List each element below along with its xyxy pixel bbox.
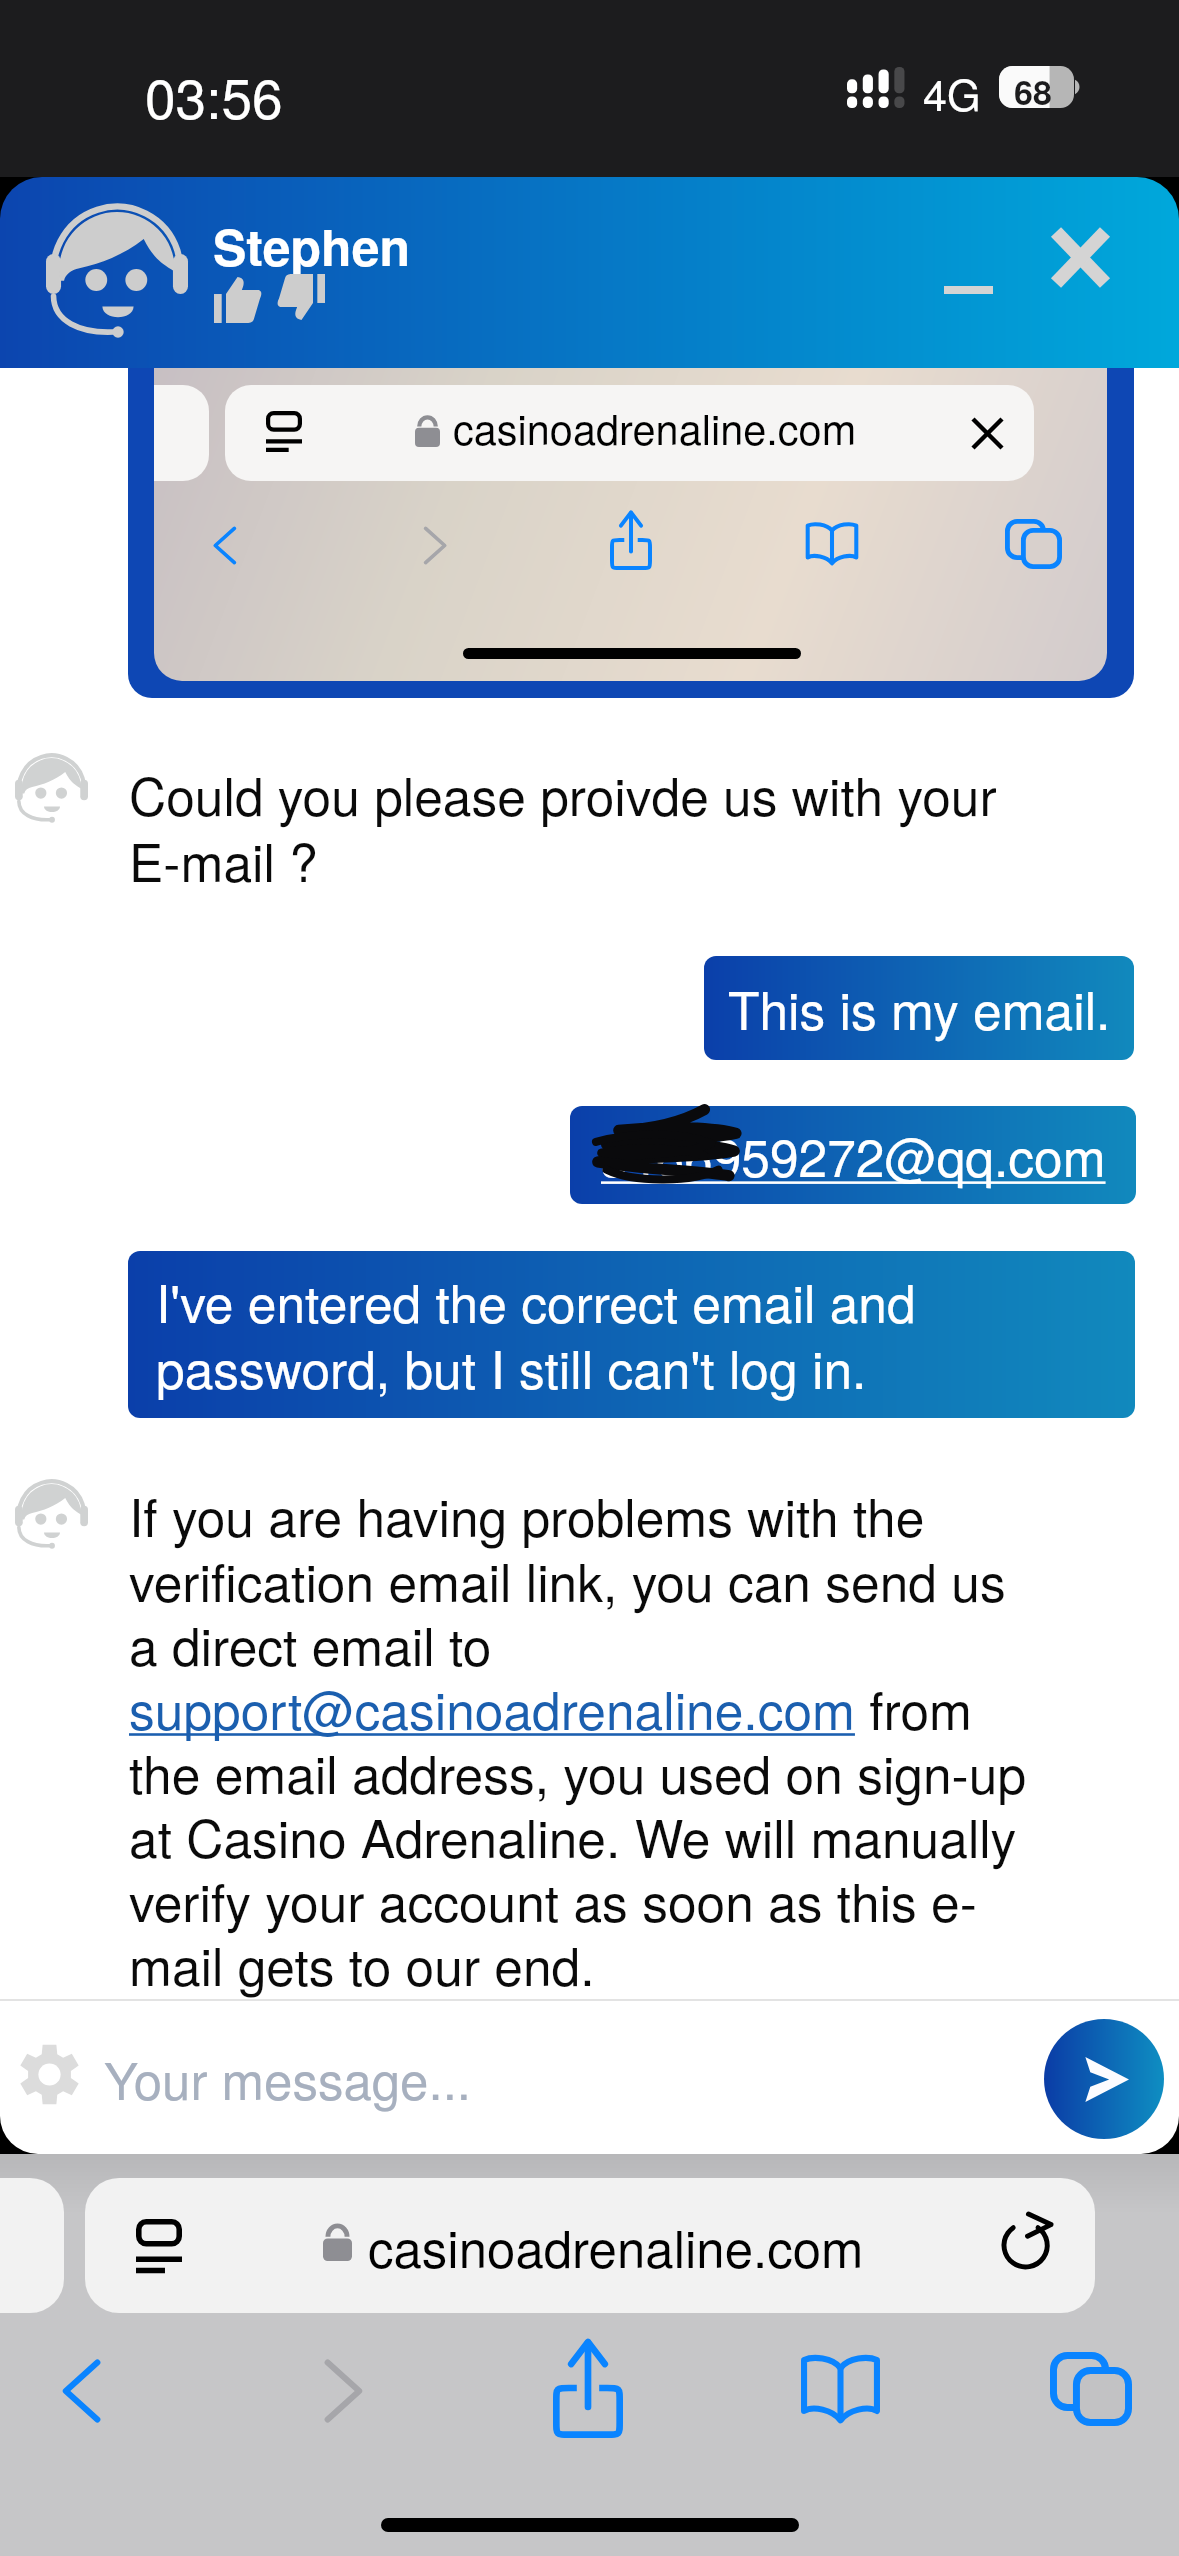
button[interactable]: Close — [1027, 200, 1131, 304]
staticText: s466959272@qq.com — [601, 1118, 1106, 1192]
button[interactable]: Minimize — [912, 237, 1025, 337]
staticText: This is my email. — [728, 971, 1111, 1045]
button[interactable]: Bookmarks — [800, 2356, 881, 2423]
button[interactable]: Tabs — [1050, 2352, 1132, 2426]
button[interactable]: Forward — [325, 2360, 363, 2422]
staticText: 4G — [923, 62, 981, 124]
button[interactable]: Send — [1044, 2019, 1164, 2139]
button[interactable]: Share — [553, 2338, 623, 2438]
staticText: casinoadrenaline.com — [368, 2209, 864, 2282]
staticText: Could you please proivde us with your E-… — [129, 757, 1059, 896]
staticText: casinoadrenaline.com — [453, 397, 857, 456]
staticText: 68 — [1014, 67, 1052, 109]
button[interactable]: Rate bad — [277, 274, 325, 320]
staticText: If you are having problems with the veri… — [129, 1478, 1094, 2000]
staticText: Your message... — [104, 2041, 471, 2114]
button[interactable]: Rate good — [214, 277, 262, 323]
staticText: I've entered the correct email and passw… — [156, 1264, 916, 1404]
staticText: 03:56 — [145, 56, 283, 135]
button[interactable]: Settings — [19, 2046, 80, 2103]
button[interactable]: Back — [62, 2360, 100, 2422]
staticText: Stephen — [213, 210, 410, 282]
button[interactable]: casinoadrenaline.com — [85, 2178, 1095, 2313]
